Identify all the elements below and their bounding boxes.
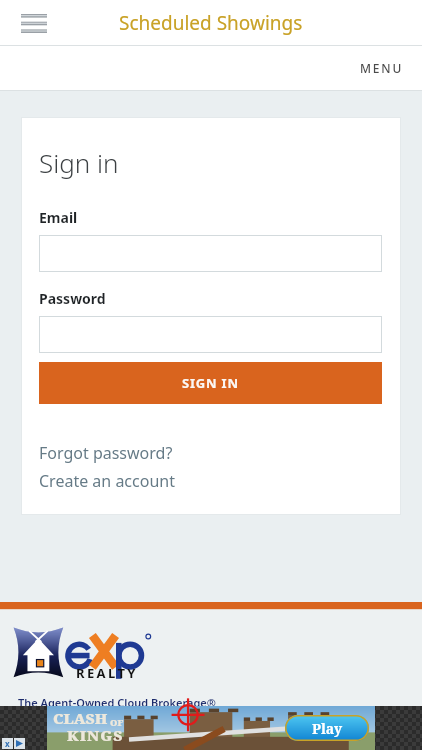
- staticText: x: [5, 738, 10, 749]
- staticText: Password: [39, 289, 106, 308]
- staticText: OF: [110, 716, 124, 728]
- button[interactable]: Ad choices: [2, 738, 25, 749]
- staticText: CLASH: [53, 708, 108, 728]
- staticText: MENU: [360, 60, 404, 76]
- staticText: Play: [312, 719, 343, 738]
- staticText: Email: [39, 208, 78, 227]
- staticText: Scheduled Showings: [119, 10, 303, 36]
- button[interactable]: Open navigation menu: [12, 5, 56, 41]
- staticText: KINGS: [67, 725, 124, 745]
- button[interactable]: SIGN IN: [39, 362, 382, 404]
- staticText: Create an account: [39, 470, 175, 492]
- button[interactable]: Advertisement: Clash of Kings, Play: [0, 706, 422, 750]
- button[interactable]: Create an account: [39, 470, 175, 492]
- button[interactable]: Play: [285, 715, 369, 741]
- button[interactable]: Forgot password?: [39, 442, 173, 464]
- staticText: SIGN IN: [182, 374, 239, 392]
- button[interactable]: MENU: [350, 52, 414, 84]
- staticText: REALTY: [76, 664, 138, 682]
- staticText: Forgot password?: [39, 442, 173, 464]
- staticText: Sign in: [39, 145, 119, 180]
- staticText: The Agent-Owned Cloud Brokerage®: [18, 695, 216, 706]
